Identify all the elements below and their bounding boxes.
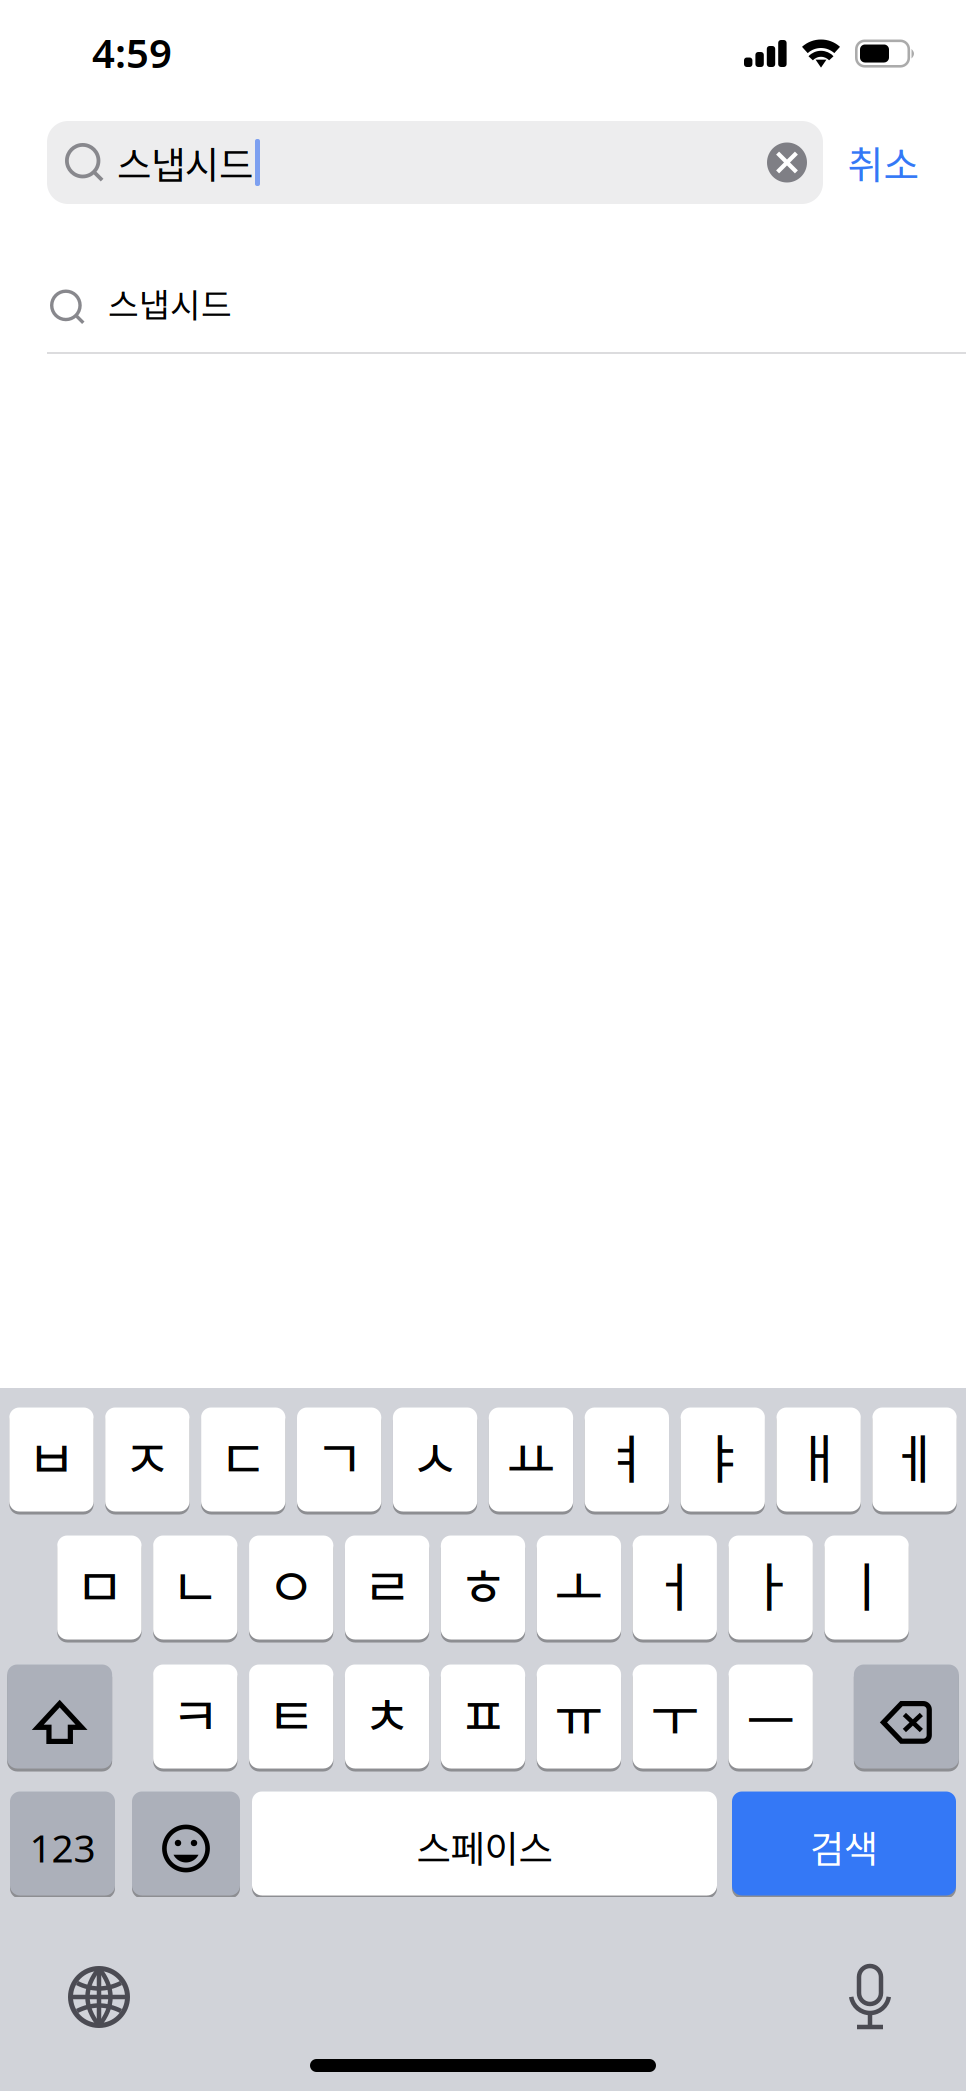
button[interactable]: ㅎ [441,1534,525,1641]
staticText: ㅠ [554,1675,603,1752]
button[interactable]: ㅇ [249,1534,333,1641]
staticText: ㅎ [458,1545,507,1622]
staticText: ㅏ [746,1545,795,1622]
button[interactable]: ㅜ [633,1663,717,1770]
staticText: ㅛ [506,1418,555,1495]
button[interactable]: ㅋ [153,1663,237,1770]
staticText: ㅂ [27,1417,76,1494]
staticText: ㅅ [411,1417,460,1494]
staticText: 123 [29,1822,95,1873]
button[interactable]: Dictation [842,1963,966,2031]
button[interactable]: Clear search [767,121,823,204]
staticText: ㅕ [602,1417,651,1494]
button[interactable] [7,1663,112,1770]
button[interactable]: Switch keyboard [0,1966,130,2028]
staticText: ㅐ [794,1417,843,1494]
button[interactable]: 123 [10,1790,115,1897]
staticText: ㅔ [890,1417,939,1494]
button[interactable]: 취소 [823,121,944,204]
button[interactable]: ㄹ [345,1534,429,1641]
staticText: 스냅시드 [108,279,232,327]
button[interactable]: ㅂ [9,1406,94,1513]
button[interactable]: 스페이스 [252,1790,717,1897]
button[interactable]: ㅑ [681,1406,765,1513]
staticText: ㅡ [746,1679,795,1756]
button[interactable] [132,1790,240,1897]
button[interactable] [854,1663,959,1770]
staticText: ㄱ [315,1417,364,1494]
staticText: ㅜ [650,1675,699,1752]
staticText: 취소 [847,134,919,190]
button[interactable]: ㅕ [585,1406,669,1513]
staticText: 스페이스 [416,1819,552,1874]
button[interactable]: ㅌ [249,1663,333,1770]
button[interactable]: 검색 [732,1790,956,1897]
staticText: ㅊ [363,1674,412,1751]
staticText: ㅌ [267,1674,316,1751]
staticText: ㅓ [650,1545,699,1622]
staticText: ㅈ [123,1417,172,1494]
button[interactable]: ㅍ [441,1663,525,1770]
staticText: ㅇ [267,1545,316,1622]
button[interactable]: ㅈ [105,1406,189,1513]
button[interactable]: ㅓ [633,1534,717,1641]
staticText: ㅋ [171,1674,220,1751]
staticText: ㅑ [698,1417,747,1494]
staticText: ㄷ [219,1417,268,1494]
staticText: 4:59 [92,26,172,79]
button[interactable]: ㅡ [728,1663,813,1770]
button[interactable]: ㅠ [537,1663,621,1770]
staticText: ㄹ [363,1545,412,1622]
button[interactable]: ㅁ [57,1534,142,1641]
button[interactable]: ㄷ [201,1406,285,1513]
button[interactable]: ㄴ [153,1534,237,1641]
staticText: 검색 [810,1819,878,1874]
staticText: ㅁ [75,1545,124,1622]
button[interactable]: ㅊ [345,1663,429,1770]
button[interactable]: ㅛ [489,1406,573,1513]
button[interactable]: ㅣ [824,1534,909,1641]
staticText: 스냅시드 [117,135,253,190]
staticText: ㅗ [554,1546,603,1623]
staticText: ㅍ [458,1674,507,1751]
button[interactable]: ㅐ [776,1406,861,1513]
button[interactable]: ㅅ [393,1406,477,1513]
staticText: ㅣ [842,1545,891,1622]
button[interactable]: ㄱ [297,1406,381,1513]
button[interactable]: ㅗ [537,1534,621,1641]
button[interactable]: ㅏ [728,1534,813,1641]
button[interactable]: ㅔ [872,1406,957,1513]
button[interactable]: 스냅시드 [0,236,966,348]
staticText: ㄴ [171,1545,220,1622]
